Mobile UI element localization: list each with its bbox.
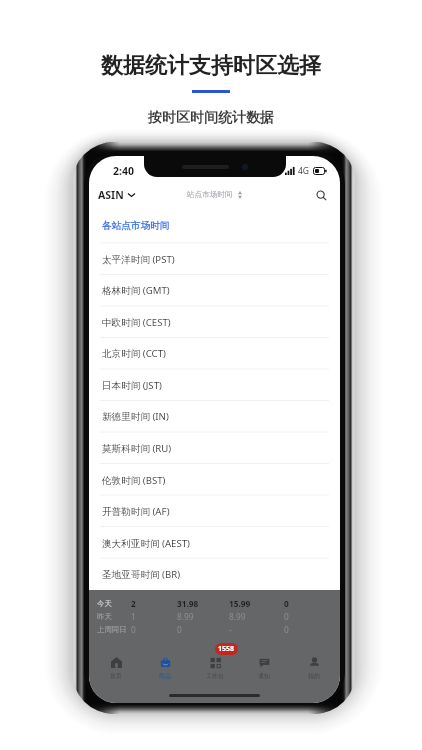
staticText: 澳大利亚时间 (AEST) <box>102 537 190 550</box>
button[interactable]: 北京时间 (CCT) <box>89 337 340 369</box>
staticText: 工作台 <box>206 672 224 679</box>
staticText: 2 <box>131 598 136 609</box>
button[interactable]: 站点市场时间 <box>183 186 246 204</box>
staticText: 圣地亚哥时间 (BR) <box>102 568 181 581</box>
staticText: 中欧时间 (CEST) <box>102 316 171 329</box>
staticText: 开普勒时间 (AF) <box>102 505 170 518</box>
staticText: 站点市场时间 <box>187 190 233 200</box>
button[interactable]: 莫斯科时间 (RU) <box>89 432 340 464</box>
staticText: 我的 <box>308 672 320 679</box>
staticText: 0 <box>131 624 136 635</box>
button[interactable]: 商品 <box>142 643 188 685</box>
staticText: 1558 <box>218 644 235 654</box>
staticText: 商品 <box>159 672 171 679</box>
button[interactable]: 开普勒时间 (AF) <box>89 495 340 527</box>
button[interactable]: 中欧时间 (CEST) <box>89 306 340 338</box>
button[interactable]: 首页 <box>93 643 139 685</box>
staticText: 4G <box>298 165 310 177</box>
button[interactable]: 我的 <box>291 643 337 685</box>
staticText: 新德里时间 (IN) <box>102 410 169 423</box>
staticText: 数据统计支持时区选择 <box>101 52 321 80</box>
staticText: 太平洋时间 (PST) <box>102 253 175 266</box>
staticText: 格林时间 (GMT) <box>102 284 170 297</box>
staticText: 昨天 <box>97 612 112 621</box>
button[interactable]: 格林时间 (GMT) <box>89 274 340 306</box>
button[interactable]: 各站点市场时间 <box>89 208 340 243</box>
staticText: 各站点市场时间 <box>102 220 170 232</box>
staticText: 伦敦时间 (BST) <box>102 474 166 487</box>
staticText: 15.99 <box>229 598 251 609</box>
button[interactable]: ASIN <box>98 184 135 206</box>
staticText: 北京时间 (CCT) <box>102 347 166 360</box>
button[interactable]: 澳大利亚时间 (AEST) <box>89 527 340 559</box>
staticText: 8.99 <box>177 611 194 622</box>
button[interactable]: 太平洋时间 (PST) <box>89 243 340 275</box>
staticText: 0 <box>284 598 289 609</box>
staticText: 0 <box>284 611 289 622</box>
staticText: 2:40 <box>113 164 134 178</box>
staticText: 日本时间 (JST) <box>102 379 162 392</box>
button[interactable]: Search <box>311 185 331 205</box>
button[interactable]: 工作台 <box>192 643 238 685</box>
button[interactable]: 通知 <box>241 643 287 685</box>
staticText: 今天 <box>97 599 112 608</box>
staticText: 莫斯科时间 (RU) <box>102 442 172 455</box>
staticText: 31.98 <box>177 598 199 609</box>
staticText: 通知 <box>258 672 270 679</box>
staticText: 8.99 <box>229 611 246 622</box>
button[interactable]: 日本时间 (JST) <box>89 369 340 401</box>
staticText: 上周同日 <box>97 625 127 634</box>
staticText: ASIN <box>98 188 124 202</box>
staticText: 0 <box>177 624 182 635</box>
staticText: 0 <box>284 624 289 635</box>
staticText: - <box>229 624 232 635</box>
staticText: 首页 <box>110 672 122 679</box>
staticText: 1 <box>131 611 136 622</box>
staticText: 按时区时间统计数据 <box>148 109 274 127</box>
button[interactable]: 伦敦时间 (BST) <box>89 464 340 496</box>
button[interactable]: 圣地亚哥时间 (BR) <box>89 558 340 590</box>
button[interactable]: 新德里时间 (IN) <box>89 400 340 432</box>
